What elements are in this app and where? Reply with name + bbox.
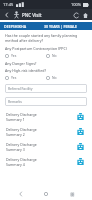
staticText: Has the couple started any family planni… xyxy=(5,33,87,43)
button[interactable]: Sync xyxy=(72,11,80,19)
staticText: PNC Visit xyxy=(22,12,42,18)
staticText: DEEPSHIKHA xyxy=(4,24,27,29)
button[interactable]: Back xyxy=(3,11,11,19)
button[interactable]: Delivery Discharge xyxy=(5,124,87,139)
staticText: Summary 2 xyxy=(6,132,25,137)
staticText: Any Danger Signs? xyxy=(5,61,87,66)
button[interactable]: Yes xyxy=(5,74,46,81)
staticText: 100% xyxy=(71,2,82,7)
staticText: Summary 4 xyxy=(6,162,25,167)
staticText: Summary 1 xyxy=(6,117,25,122)
staticText: 17:45 xyxy=(3,2,14,7)
button[interactable]: Home xyxy=(81,11,89,19)
button[interactable]: Open document xyxy=(75,141,86,152)
staticText: Delivery Discharge xyxy=(6,157,37,162)
button[interactable]: Back xyxy=(16,189,26,199)
button[interactable]: Open document xyxy=(75,126,86,137)
staticText: Yes xyxy=(11,75,17,80)
staticText: No xyxy=(52,53,57,58)
staticText: Remarks xyxy=(8,99,22,104)
staticText: Yes xyxy=(11,53,17,58)
button[interactable]: Remarks xyxy=(5,97,87,106)
button[interactable]: Open document xyxy=(75,156,86,167)
staticText: Any High-risk identified? xyxy=(5,68,87,73)
button[interactable]: No xyxy=(46,52,87,59)
staticText: Delivery Discharge xyxy=(6,127,37,132)
staticText: Summary 3 xyxy=(6,147,25,152)
staticText: Referral Facility xyxy=(8,86,33,91)
staticText: Any Postpartum Contraception (PPC) xyxy=(5,46,87,51)
button[interactable]: Home xyxy=(41,189,51,199)
staticText: 30 YEARS | FEMALE xyxy=(44,24,78,29)
button[interactable]: Recent apps xyxy=(67,189,77,199)
button[interactable]: Delivery Discharge xyxy=(5,154,87,169)
staticText: No xyxy=(52,75,57,80)
button[interactable]: Open document xyxy=(75,111,86,122)
button[interactable]: Referral Facility xyxy=(5,84,87,93)
staticText: Delivery Discharge xyxy=(6,142,37,147)
staticText: Delivery Discharge xyxy=(6,112,37,117)
button[interactable]: Delivery Discharge xyxy=(5,109,87,124)
button[interactable]: Yes xyxy=(5,52,46,59)
button[interactable]: Delivery Discharge xyxy=(5,139,87,154)
button[interactable]: No xyxy=(46,74,87,81)
